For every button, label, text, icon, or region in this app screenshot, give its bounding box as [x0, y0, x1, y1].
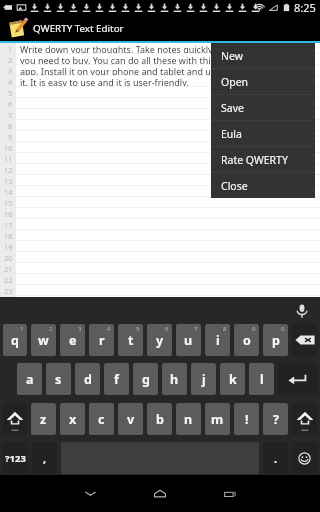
- button[interactable]: o: [234, 324, 259, 356]
- staticText: i: [216, 332, 220, 349]
- staticText: 7: [194, 325, 198, 333]
- button[interactable]: n: [176, 403, 201, 435]
- staticText: h: [170, 371, 179, 388]
- staticText: QWERTY Text Editor: [33, 22, 124, 35]
- staticText: b: [156, 411, 164, 428]
- staticText: 9: [252, 325, 256, 333]
- staticText: u: [184, 332, 193, 349]
- staticText: ?: [273, 411, 279, 428]
- button[interactable]: a: [17, 363, 42, 395]
- staticText: app. Install it on your phone and tablet…: [20, 65, 246, 76]
- staticText: 12: [4, 165, 13, 175]
- button[interactable]: m: [205, 403, 230, 435]
- button[interactable]: r: [89, 324, 114, 356]
- button[interactable]: f: [104, 363, 129, 395]
- button[interactable]: k: [220, 363, 245, 395]
- button[interactable]: !: [234, 403, 259, 435]
- button[interactable]: e: [60, 324, 85, 356]
- button[interactable]: Shift: [3, 403, 27, 435]
- button[interactable]: Recents: [195, 475, 265, 512]
- staticText: 23: [4, 286, 13, 296]
- staticText: Write down your thoughts. Take notes qui…: [20, 43, 263, 54]
- button[interactable]: .: [263, 442, 288, 474]
- button[interactable]: New: [211, 43, 315, 68]
- staticText: 1: [8, 44, 13, 54]
- staticText: r: [99, 332, 105, 349]
- staticText: t: [128, 332, 134, 349]
- staticText: l: [260, 371, 264, 388]
- staticText: 4: [8, 77, 13, 87]
- button[interactable]: z: [31, 403, 56, 435]
- button[interactable]: Voice input: [294, 303, 310, 319]
- button[interactable]: Open: [211, 69, 315, 94]
- staticText: it. It is easy to use and it is user-fri…: [20, 76, 189, 87]
- button[interactable]: j: [191, 363, 216, 395]
- button[interactable]: Shift: [292, 403, 317, 435]
- button[interactable]: Save: [211, 95, 315, 120]
- button[interactable]: q: [3, 324, 27, 356]
- button[interactable]: u: [176, 324, 201, 356]
- button[interactable]: Enter: [278, 363, 317, 395]
- staticText: 7: [8, 110, 13, 120]
- staticText: q: [11, 332, 19, 349]
- staticText: m: [211, 411, 224, 428]
- staticText: !: [245, 411, 249, 428]
- staticText: 2: [49, 325, 53, 333]
- button[interactable]: Back: [55, 475, 125, 512]
- button[interactable]: h: [162, 363, 187, 395]
- staticText: 5: [136, 325, 140, 333]
- button[interactable]: s: [46, 363, 71, 395]
- staticText: Open: [221, 75, 249, 89]
- staticText: o: [243, 332, 251, 349]
- staticText: 8: [223, 325, 227, 333]
- button[interactable]: Delete: [292, 324, 317, 356]
- button[interactable]: p: [263, 324, 288, 356]
- staticText: p: [272, 332, 280, 349]
- staticText: 15: [4, 198, 13, 208]
- button[interactable]: y: [147, 324, 172, 356]
- staticText: Eula: [221, 127, 242, 141]
- staticText: 18: [4, 231, 13, 241]
- staticText: 13: [4, 176, 13, 186]
- button[interactable]: ,: [32, 442, 57, 474]
- staticText: 19: [4, 242, 13, 252]
- staticText: 10: [4, 143, 13, 153]
- staticText: ?123: [5, 452, 26, 465]
- button[interactable]: x: [60, 403, 85, 435]
- staticText: 17: [4, 220, 13, 230]
- button[interactable]: Close: [211, 173, 315, 198]
- staticText: k: [229, 371, 237, 388]
- staticText: Close: [221, 179, 248, 193]
- button[interactable]: Rate QWERTY: [211, 147, 315, 172]
- button[interactable]: ?: [263, 403, 288, 435]
- staticText: 2: [8, 55, 13, 65]
- staticText: z: [40, 411, 47, 428]
- staticText: 20: [4, 253, 13, 263]
- staticText: v: [127, 411, 135, 428]
- staticText: n: [184, 411, 193, 428]
- staticText: .: [274, 451, 278, 466]
- button[interactable]: d: [75, 363, 100, 395]
- staticText: 1: [20, 325, 24, 333]
- staticText: 21: [4, 264, 13, 274]
- button[interactable]: ?123: [3, 442, 28, 474]
- button[interactable]: g: [133, 363, 158, 395]
- staticText: a: [26, 371, 34, 388]
- button[interactable]: l: [249, 363, 274, 395]
- staticText: y: [156, 332, 164, 349]
- button[interactable]: b: [147, 403, 172, 435]
- button[interactable]: Eula: [211, 121, 315, 146]
- button[interactable]: Emoji: [292, 442, 317, 474]
- staticText: g: [142, 371, 150, 388]
- button[interactable]: c: [89, 403, 114, 435]
- button[interactable]: w: [31, 324, 56, 356]
- staticText: 3: [78, 325, 82, 333]
- staticText: f: [114, 371, 119, 388]
- staticText: 9: [8, 132, 13, 142]
- button[interactable]: v: [118, 403, 143, 435]
- button[interactable]: t: [118, 324, 143, 356]
- button[interactable]: i: [205, 324, 230, 356]
- button[interactable]: Home: [125, 475, 195, 512]
- staticText: 11: [4, 154, 13, 164]
